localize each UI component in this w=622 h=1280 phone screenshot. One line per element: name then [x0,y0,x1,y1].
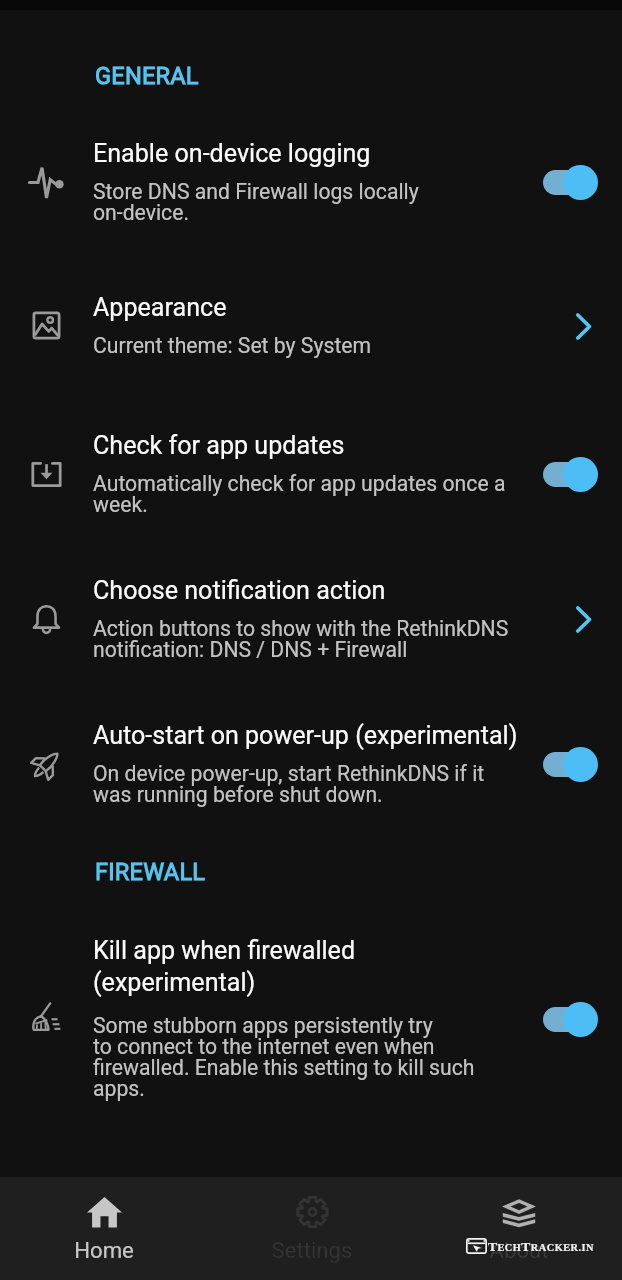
staticText: On device power-up, start RethinkDNS if … [93,761,485,807]
button[interactable]: Toggle setting [543,742,622,786]
staticText: Check for app updates [93,431,345,460]
button[interactable]: Toggle setting [543,452,622,496]
button[interactable]: Enable on-device logging [0,90,622,225]
staticText: Action buttons to show with the RethinkD… [93,616,509,662]
button[interactable]: Toggle setting [543,160,622,204]
button[interactable]: Kill app when firewalled (experimental) [0,886,622,1101]
staticText: Some stubborn apps persistently try to c… [93,1013,475,1101]
staticText: FIREWALL [95,858,206,886]
button[interactable]: Home [0,1177,208,1280]
staticText: Appearance [93,293,227,322]
button[interactable]: Check for app updates [0,358,622,517]
staticText: Kill app when firewalled (experimental) [93,936,356,997]
staticText: Enable on-device logging [93,139,371,168]
button[interactable]: Appearance [0,225,622,358]
staticText: GENERAL [95,62,199,90]
button[interactable]: Choose notification action [0,517,622,662]
staticText: Auto-start on power-up (experimental) [93,721,518,750]
button[interactable]: About [415,1177,622,1280]
button[interactable]: Auto-start on power-up (experimental) [0,662,622,807]
button[interactable]: Open [561,597,605,641]
button[interactable]: Toggle setting [543,997,622,1041]
staticText: Choose notification action [93,576,386,605]
staticText: Settings [271,1237,353,1263]
button[interactable]: Settings [208,1177,415,1280]
button[interactable]: Open [561,304,605,348]
staticText: TECHTRACKER.IN [488,1239,594,1254]
staticText: Current theme: Set by System [93,333,372,358]
staticText: About [489,1237,549,1263]
staticText: Home [74,1237,134,1263]
staticText: Automatically check for app updates once… [93,471,506,517]
staticText: Store DNS and Firewall logs locally on-d… [93,179,419,225]
